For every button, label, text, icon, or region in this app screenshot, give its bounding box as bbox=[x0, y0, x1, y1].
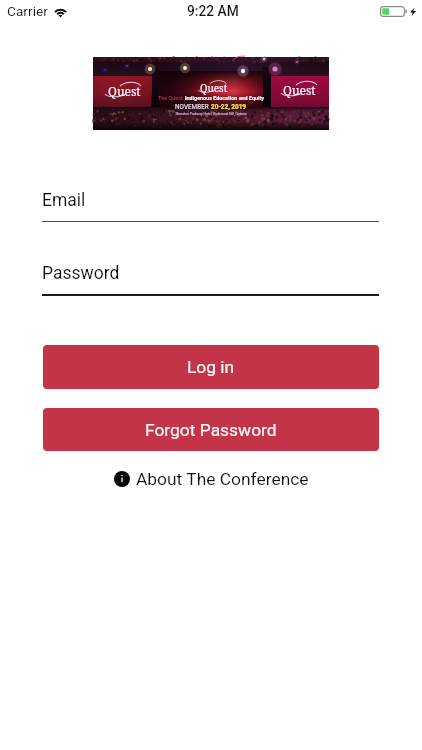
button[interactable]: Log in bbox=[43, 345, 379, 389]
other: Info bbox=[114, 471, 130, 487]
staticText: About The Conference bbox=[136, 469, 309, 489]
staticText: 20-22, 2019 bbox=[211, 103, 247, 111]
staticText: Password bbox=[42, 263, 120, 284]
staticText: Indigenous Education and Equity bbox=[185, 95, 264, 101]
button[interactable]: Info bbox=[110, 467, 313, 491]
staticText: NOVEMBER bbox=[175, 103, 211, 111]
staticText: Email bbox=[42, 190, 86, 211]
staticText: Forgot Password bbox=[145, 420, 277, 440]
staticText: 9:22 AM bbox=[187, 3, 239, 19]
staticText: Sheraton Parkway Hotel, Richmond Hill, O… bbox=[175, 112, 247, 116]
staticText: The Quest bbox=[158, 95, 185, 101]
staticText: Quest bbox=[200, 81, 228, 95]
staticText: Quest bbox=[283, 82, 316, 98]
button[interactable]: Forgot Password bbox=[43, 408, 379, 451]
staticText: Carrier bbox=[7, 3, 48, 19]
staticText: Log in bbox=[187, 357, 235, 377]
staticText: Quest bbox=[108, 83, 141, 99]
